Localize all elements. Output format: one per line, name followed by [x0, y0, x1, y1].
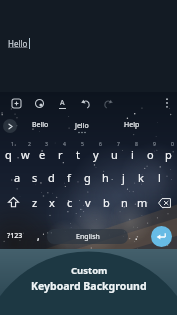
- button[interactable]: [3, 119, 17, 133]
- button[interactable]: [0, 190, 26, 215]
- staticText: q: [5, 147, 12, 162]
- staticText: 0: [171, 141, 174, 148]
- button[interactable]: Custom: [0, 249, 177, 315]
- button[interactable]: English: [47, 223, 128, 249]
- button[interactable]: d: [43, 165, 60, 190]
- button[interactable]: a: [9, 165, 26, 190]
- staticText: x: [49, 195, 55, 210]
- staticText: Hello: [8, 38, 28, 49]
- staticText: 8: [135, 141, 138, 148]
- button[interactable]: [97, 94, 119, 112]
- button[interactable]: k: [132, 165, 150, 190]
- staticText: r: [58, 147, 63, 162]
- staticText: e: [39, 147, 46, 162]
- button[interactable]: 3: [34, 140, 51, 165]
- button[interactable]: 4: [51, 140, 69, 165]
- staticText: Keyboard Background: [31, 279, 147, 293]
- staticText: y: [93, 147, 99, 162]
- button[interactable]: Help: [112, 114, 152, 136]
- button[interactable]: 5: [69, 140, 87, 165]
- button[interactable]: [145, 223, 177, 249]
- button[interactable]: b: [97, 190, 115, 215]
- staticText: h: [102, 170, 109, 185]
- staticText: n: [121, 195, 128, 210]
- button[interactable]: 7: [105, 140, 123, 165]
- staticText: .: [135, 229, 138, 243]
- staticText: g: [84, 170, 91, 185]
- staticText: k: [138, 170, 144, 185]
- staticText: o: [147, 147, 154, 162]
- button[interactable]: x: [43, 190, 61, 215]
- button[interactable]: Jello: [62, 114, 102, 140]
- button[interactable]: 1: [0, 140, 17, 165]
- staticText: 2: [28, 141, 31, 148]
- staticText: Custom: [71, 264, 108, 277]
- button[interactable]: m: [133, 190, 151, 215]
- button[interactable]: g: [78, 165, 96, 190]
- staticText: j: [122, 170, 125, 185]
- staticText: Bello: [32, 120, 49, 130]
- staticText: v: [85, 195, 91, 210]
- button[interactable]: .: [128, 223, 145, 249]
- staticText: l: [158, 170, 161, 185]
- button[interactable]: A: [51, 94, 73, 112]
- button[interactable]: 0: [159, 140, 177, 165]
- staticText: p: [165, 147, 172, 162]
- staticText: w: [21, 147, 30, 162]
- button[interactable]: s: [26, 165, 43, 190]
- button[interactable]: ,: [30, 223, 47, 249]
- staticText: 7: [117, 141, 120, 148]
- button[interactable]: [74, 94, 96, 112]
- button[interactable]: [28, 94, 50, 112]
- staticText: Jello: [75, 121, 89, 131]
- button[interactable]: [157, 94, 177, 112]
- button[interactable]: Bello: [20, 114, 60, 136]
- staticText: f: [67, 170, 71, 185]
- staticText: 3: [45, 141, 48, 148]
- button[interactable]: ?123: [0, 223, 30, 249]
- button[interactable]: [151, 190, 177, 215]
- staticText: 4: [63, 141, 66, 148]
- staticText: c: [67, 195, 73, 210]
- staticText: m: [137, 195, 148, 210]
- staticText: u: [111, 147, 118, 162]
- button[interactable]: f: [60, 165, 78, 190]
- staticText: a: [14, 170, 21, 185]
- button[interactable]: 2: [17, 140, 34, 165]
- staticText: A: [60, 98, 65, 108]
- button[interactable]: 6: [87, 140, 105, 165]
- button[interactable]: c: [61, 190, 79, 215]
- staticText: Help: [124, 120, 140, 130]
- staticText: t: [76, 147, 80, 162]
- button[interactable]: n: [115, 190, 133, 215]
- button[interactable]: [5, 94, 27, 112]
- staticText: 5: [81, 141, 84, 148]
- staticText: ?123: [7, 231, 23, 241]
- button[interactable]: Hello: [0, 0, 177, 92]
- button[interactable]: 8: [123, 140, 141, 165]
- button[interactable]: l: [150, 165, 168, 190]
- staticText: s: [32, 170, 38, 185]
- staticText: 1: [11, 141, 14, 148]
- button[interactable]: z: [26, 190, 43, 215]
- staticText: b: [103, 195, 110, 210]
- button[interactable]: v: [79, 190, 97, 215]
- staticText: 9: [153, 141, 156, 148]
- staticText: English: [76, 232, 100, 242]
- button[interactable]: h: [96, 165, 114, 190]
- staticText: d: [48, 170, 55, 185]
- staticText: i: [131, 147, 134, 162]
- button[interactable]: j: [114, 165, 132, 190]
- staticText: z: [32, 195, 38, 210]
- button[interactable]: 9: [141, 140, 159, 165]
- staticText: 6: [99, 141, 102, 148]
- staticText: ,: [37, 229, 40, 243]
